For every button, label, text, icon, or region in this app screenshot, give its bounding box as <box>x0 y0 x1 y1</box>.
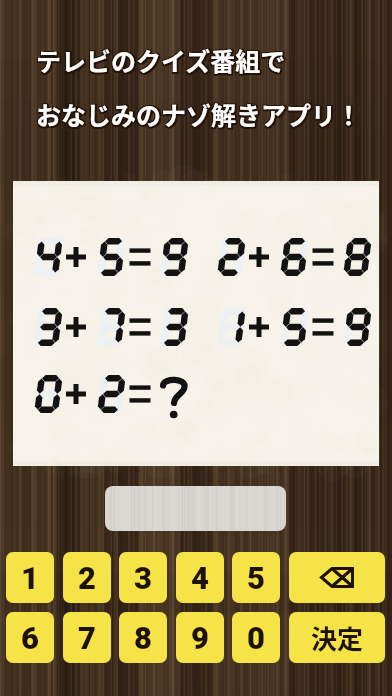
button[interactable]: Answer field <box>105 486 286 531</box>
staticText: おなじみのナゾ解きアプリ！ <box>35 98 361 134</box>
staticText: おなじみのナゾ解きアプリ！ <box>36 95 362 131</box>
staticText: おなじみのナゾ解きアプリ！ <box>35 96 361 132</box>
staticText: 0 <box>247 620 265 656</box>
staticText: テレビのクイズ番組で <box>38 42 288 78</box>
staticText: おなじみのナゾ解きアプリ！ <box>38 95 364 131</box>
staticText: 8 <box>134 620 152 656</box>
button[interactable]: 決定 <box>289 612 385 663</box>
staticText: 9 <box>191 620 209 656</box>
staticText: 決定 <box>311 619 364 657</box>
button[interactable]: 7 <box>63 612 111 663</box>
staticText: テレビのクイズ番組で <box>36 42 286 78</box>
staticText: 4 <box>191 560 209 596</box>
staticText: テレビのクイズ番組で <box>36 44 286 80</box>
button[interactable]: 2 <box>63 552 111 603</box>
staticText: テレビのクイズ番組で <box>35 44 285 80</box>
staticText: おなじみのナゾ解きアプリ！ <box>36 98 362 134</box>
staticText: テレビのクイズ番組で <box>38 41 288 77</box>
button[interactable]: 0 <box>232 612 280 663</box>
staticText: 7 <box>78 620 96 656</box>
staticText: 1 <box>21 560 39 596</box>
button[interactable]: 9 <box>176 612 224 663</box>
staticText: 3 <box>134 560 152 596</box>
staticText: おなじみのナゾ解きアプリ！ <box>35 95 361 131</box>
button[interactable]: 6 <box>6 612 54 663</box>
staticText: おなじみのナゾ解きアプリ！ <box>38 96 364 132</box>
staticText: テレビのクイズ番組で <box>35 41 285 77</box>
button[interactable]: 3 <box>119 552 167 603</box>
button[interactable]: 4 <box>176 552 224 603</box>
staticText: おなじみのナゾ解きアプリ！ <box>36 96 362 132</box>
staticText: 5 <box>247 560 265 596</box>
button[interactable]: 1 <box>6 552 54 603</box>
button[interactable]: Backspace <box>289 552 385 603</box>
button[interactable]: 5 <box>232 552 280 603</box>
staticText: テレビのクイズ番組で <box>36 41 286 77</box>
staticText: 2 <box>78 560 96 596</box>
staticText: テレビのクイズ番組で <box>38 44 288 80</box>
button[interactable]: 8 <box>119 612 167 663</box>
staticText: 6 <box>21 620 39 656</box>
staticText: おなじみのナゾ解きアプリ！ <box>38 98 364 134</box>
staticText: テレビのクイズ番組で <box>35 42 285 78</box>
